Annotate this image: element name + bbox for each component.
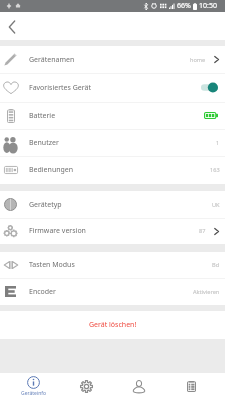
button[interactable]: Geräteinfo [7, 373, 59, 400]
button[interactable]: Benutzer [0, 129, 225, 156]
button[interactable]: Tasten Modus [0, 252, 225, 278]
button[interactable]: Tasks [165, 373, 217, 400]
staticText: Gerät löschen! [89, 320, 137, 330]
staticText: 66% [177, 1, 191, 11]
staticText: Firmware version [29, 226, 86, 236]
button[interactable]: Bedienungen [0, 156, 225, 184]
staticText: Batterie [29, 111, 56, 121]
button[interactable]: Gerätenamen [0, 46, 225, 73]
staticText: 163 [210, 166, 220, 174]
button[interactable]: Profile [113, 373, 165, 400]
staticText: Bd [212, 261, 220, 269]
staticText: Favorisiertes Gerät [29, 83, 91, 93]
button[interactable]: Favorisiertes Gerät [0, 73, 225, 102]
staticText: Bedienungen [29, 165, 74, 175]
staticText: 87 [199, 227, 206, 235]
button[interactable]: Firmware version [0, 218, 225, 244]
button[interactable]: Back [0, 15, 24, 39]
staticText: Geräteinfo [21, 390, 46, 397]
staticText: Tasten Modus [29, 260, 75, 270]
staticText: Gerätenamen [29, 55, 75, 65]
button[interactable]: Settings [60, 373, 112, 400]
staticText: Benutzer [29, 138, 59, 148]
staticText: Encoder [29, 287, 56, 297]
button[interactable]: Encoder [0, 278, 225, 305]
staticText: UK [212, 201, 220, 209]
staticText: 10:50 [199, 1, 217, 11]
staticText: home [190, 56, 206, 64]
button[interactable]: Gerätetyp [0, 191, 225, 218]
staticText: Aktivieren [193, 288, 220, 296]
staticText: 1 [216, 139, 220, 147]
staticText: Gerätetyp [29, 200, 62, 210]
button[interactable]: Batterie [0, 102, 225, 129]
button[interactable]: Gerät löschen! [0, 311, 225, 339]
